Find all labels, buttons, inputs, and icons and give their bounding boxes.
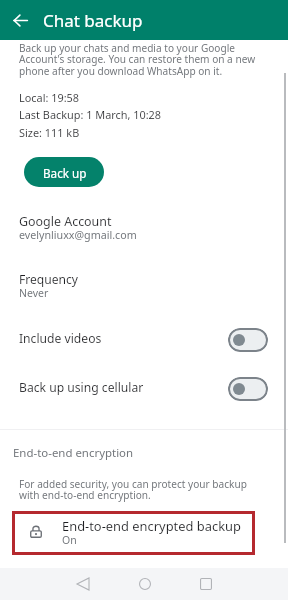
button[interactable]: Include videos	[0, 326, 288, 354]
button[interactable]: Recent apps	[175, 568, 236, 600]
button[interactable]: Back up	[24, 157, 104, 187]
staticText: Back up using cellular	[19, 379, 228, 396]
staticText: On	[62, 533, 77, 547]
staticText: Frequency	[19, 271, 79, 287]
staticText: Size: 111 kB	[19, 125, 80, 140]
button[interactable]: Frequency	[0, 265, 288, 303]
staticText: Back up	[43, 165, 87, 181]
button[interactable]: Home	[114, 568, 175, 600]
button[interactable]: Back	[52, 568, 113, 600]
staticText: Chat backup	[43, 9, 143, 32]
staticText: Last Backup: 1 March, 10:28	[19, 107, 162, 122]
button[interactable]: Back	[0, 0, 40, 40]
staticText: End-to-end encrypted backup	[62, 517, 241, 535]
staticText: Include videos	[19, 330, 228, 347]
staticText: Never	[19, 286, 49, 300]
staticText: Google Account	[19, 213, 112, 230]
staticText: evelynliuxx@gmail.com	[19, 228, 137, 243]
button[interactable]: End-to-end encrypted backup	[12, 511, 255, 555]
staticText: Back up your chats and media to your Goo…	[19, 41, 263, 78]
button[interactable]: Google Account	[0, 207, 288, 245]
staticText: For added security, you can protect your…	[19, 477, 253, 502]
staticText: Local: 19:58	[19, 90, 80, 105]
button[interactable]: Back up using cellular	[0, 375, 288, 403]
staticText: End-to-end encryption	[13, 445, 134, 461]
